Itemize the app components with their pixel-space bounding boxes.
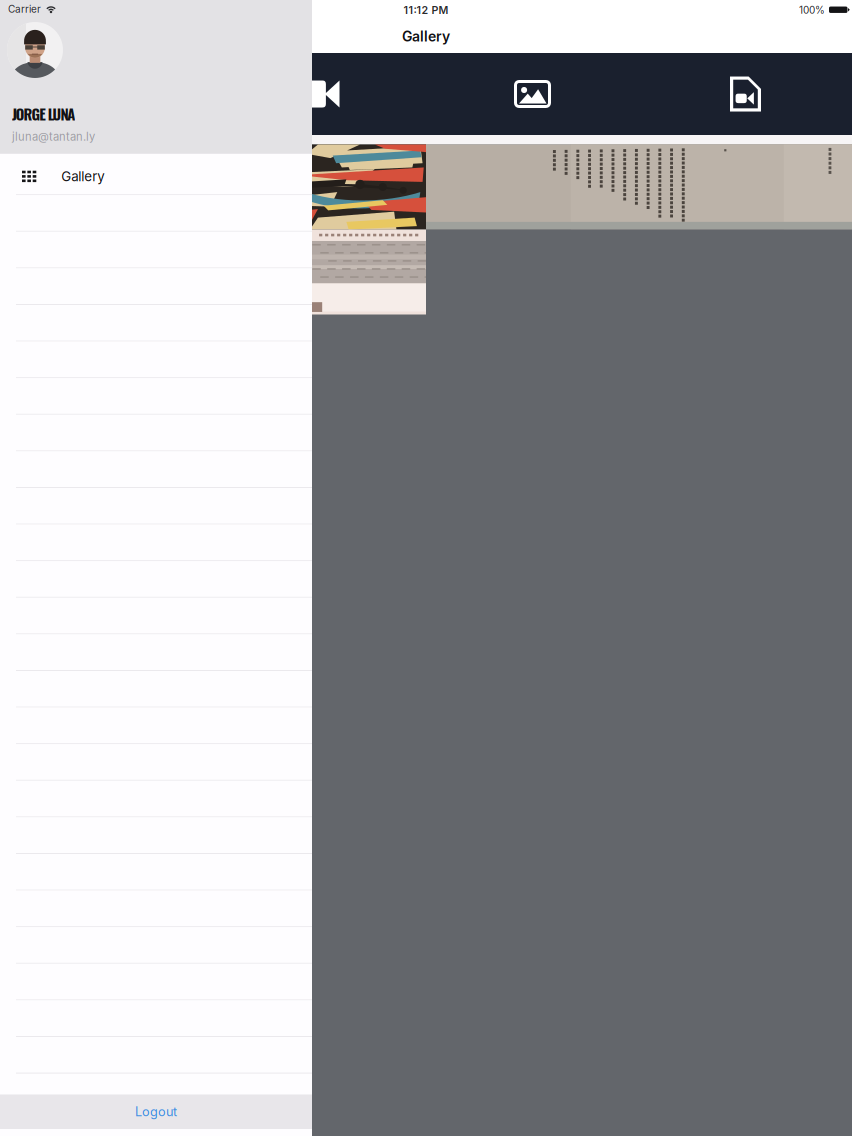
button[interactable]: Logout [0,1094,312,1129]
button[interactable]: Photo 2 [0,229,426,314]
staticText: Gallery [61,168,104,184]
staticText: Logout [135,1104,177,1119]
staticText: Gallery [402,28,450,45]
button[interactable]: Video files [639,53,852,135]
button[interactable]: Gallery [0,159,312,195]
button[interactable] [0,817,312,854]
button[interactable] [0,268,312,305]
staticText: Carrier [8,3,41,15]
staticText: jluna@tantan.ly [12,130,95,144]
staticText: 100% [799,4,825,16]
button[interactable]: Photo 3 [426,144,852,229]
button[interactable]: Take photo [0,53,213,135]
button[interactable] [0,451,312,488]
button[interactable]: Record video [213,53,426,135]
button[interactable] [0,1000,312,1037]
staticText: 11:12 PM [403,3,448,16]
button[interactable]: Photo 1 [0,144,426,229]
button[interactable] [0,634,312,671]
staticText: JORGE LUNA [12,103,75,125]
button[interactable]: Photos [426,53,639,135]
